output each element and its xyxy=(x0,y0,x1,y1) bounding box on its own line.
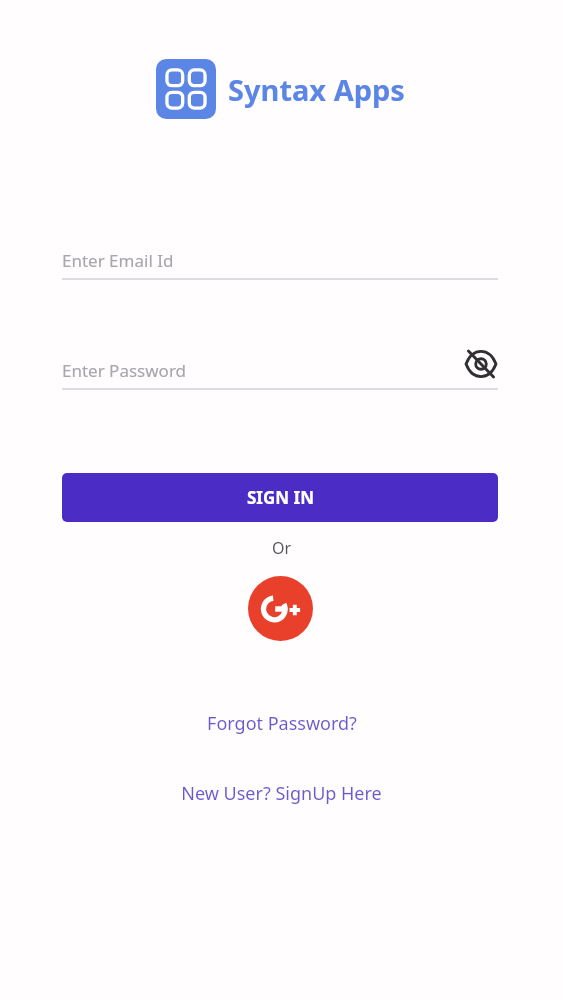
staticText: Enter Email Id xyxy=(62,249,174,272)
staticText: SIGN IN xyxy=(247,486,314,509)
button[interactable]: Enter Email Id xyxy=(62,240,498,280)
staticText: Or xyxy=(272,537,292,559)
button[interactable]: Sign in with Google xyxy=(248,576,313,641)
button[interactable]: SIGN IN xyxy=(62,473,498,522)
button[interactable]: Enter Password xyxy=(62,350,498,390)
staticText: New User? SignUp Here xyxy=(181,781,382,806)
staticText: Syntax Apps xyxy=(228,70,405,109)
button[interactable]: Toggle password visibility xyxy=(458,341,504,387)
staticText: Forgot Password? xyxy=(207,711,357,736)
button[interactable]: New User? SignUp Here xyxy=(171,778,392,809)
button[interactable]: Forgot Password? xyxy=(197,708,367,739)
staticText: Enter Password xyxy=(62,359,187,382)
